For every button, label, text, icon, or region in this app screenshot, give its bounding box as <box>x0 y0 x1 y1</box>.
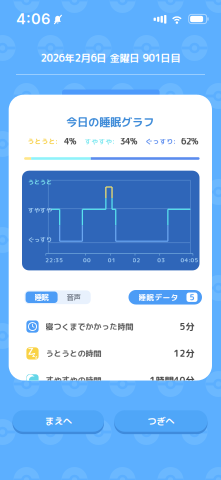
staticText: つぎへ <box>147 414 174 427</box>
staticText: 02 <box>132 256 140 264</box>
staticText: 2026年2月6日 金曜日 901日目 <box>40 51 180 65</box>
staticText: 寝つくまでかかった時間 <box>46 321 134 332</box>
button[interactable]: 睡眠データ <box>128 290 202 304</box>
staticText: ぐっすり: <box>145 137 176 146</box>
staticText: うとうと <box>28 178 52 186</box>
staticText: ぐっすり <box>28 235 52 244</box>
staticText: 04:05 <box>180 256 198 264</box>
staticText: うとうとの時間 <box>46 348 102 359</box>
staticText: 5分 <box>179 320 194 333</box>
staticText: 睡眠 <box>35 292 49 302</box>
staticText: 34% <box>120 135 137 147</box>
staticText: z <box>35 354 38 360</box>
staticText: 音声 <box>67 292 81 302</box>
button[interactable]: つぎへ <box>114 409 207 433</box>
staticText: 12分 <box>173 347 194 360</box>
staticText: 22:35 <box>45 256 63 264</box>
staticText: 今日の睡眠グラフ <box>66 115 154 130</box>
staticText: 62% <box>181 135 198 147</box>
staticText: 4% <box>64 135 76 147</box>
staticText: 03 <box>157 256 165 264</box>
button[interactable]: まえへ <box>12 409 104 433</box>
staticText: 睡眠データ <box>138 292 178 303</box>
button[interactable]: Z <box>26 347 194 360</box>
staticText: 00 <box>83 256 91 264</box>
staticText: Z <box>28 347 33 357</box>
staticText: まえへ <box>45 414 72 427</box>
staticText: すやすや: <box>84 137 115 146</box>
staticText: 5 <box>189 292 194 303</box>
staticText: z <box>32 351 36 358</box>
staticText: 1時間40分 <box>149 374 194 387</box>
button[interactable]: 寝つくまでかかった時間 <box>26 320 194 333</box>
staticText: すやすや <box>28 206 52 214</box>
staticText: すやすやの時間 <box>46 375 102 386</box>
button[interactable]: すやすやの時間 <box>26 374 194 387</box>
staticText: 01 <box>108 256 116 264</box>
button[interactable]: 音声 <box>58 291 90 303</box>
button[interactable]: 睡眠 <box>26 291 58 303</box>
staticText: うとうと: <box>27 137 58 146</box>
staticText: 4:06 <box>16 10 50 28</box>
